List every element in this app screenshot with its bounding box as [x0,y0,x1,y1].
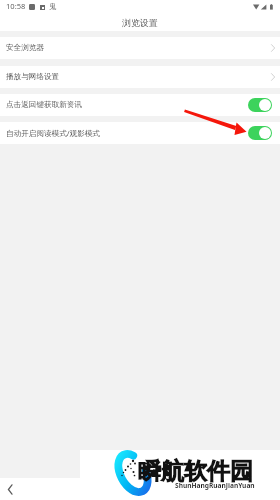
button[interactable]: 自动开启阅读模式/观影模式 [0,122,280,144]
button[interactable]: 点击返回键获取新资讯 [0,94,280,116]
staticText: 鬼 [49,2,57,11]
staticText: ShunHangRuanJianYuan [175,481,255,490]
button[interactable]: 安全浏览器 [0,37,280,59]
staticText: 瞬航软件园 [138,457,253,486]
staticText: 浏览设置 [122,17,158,28]
button[interactable]: Toggle [248,126,272,140]
staticText: 自动开启阅读模式/观影模式 [6,128,100,138]
staticText: 10:58 [6,1,26,11]
button[interactable]: Toggle [248,98,272,112]
button[interactable]: Back [0,479,21,500]
staticText: 播放与网络设置 [6,72,60,82]
button[interactable]: 播放与网络设置 [0,66,280,88]
staticText: 安全浏览器 [6,43,44,53]
staticText: 点击返回键获取新资讯 [6,100,82,110]
